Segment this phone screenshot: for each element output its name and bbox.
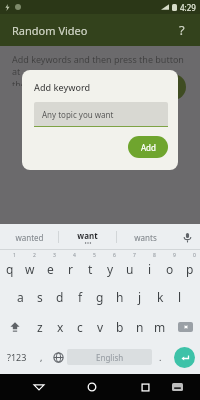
staticText: e [47,261,54,277]
button[interactable]: c [70,312,90,342]
staticText: s [37,289,43,305]
button[interactable]: 6 [100,250,120,282]
staticText: 5 [93,252,96,259]
button[interactable]: a [10,282,30,312]
button[interactable]: Shift [0,312,30,342]
staticText: 7 [133,252,136,259]
staticText: f [78,289,83,305]
button[interactable]: j [130,282,150,312]
button[interactable]: Help [172,20,192,40]
button[interactable]: s [30,282,50,312]
button[interactable]: 7 [120,250,140,282]
staticText: 6 [113,252,116,259]
staticText: 0 [193,252,196,259]
button[interactable]: Add [128,136,168,158]
button[interactable]: Backspace [170,312,200,342]
button[interactable]: 0 [180,250,200,282]
staticText: ? [179,21,185,39]
staticText: u [126,261,134,277]
staticText: English [96,352,124,363]
button[interactable]: Change language [49,342,67,372]
button[interactable]: 4 [60,250,80,282]
button[interactable]: v [90,312,110,342]
button[interactable]: 9 [160,250,180,282]
button[interactable]: h [110,282,130,312]
staticText: i [148,261,152,277]
staticText: Add keyword [34,81,91,93]
button[interactable]: z [30,312,50,342]
button[interactable]: English [67,349,152,365]
staticText: 1 [13,252,16,259]
staticText: Any topic you want [42,109,114,120]
staticText: t [88,261,93,277]
staticText: Random Video [12,23,88,38]
button[interactable]: b [110,312,130,342]
staticText: . [159,351,162,363]
button[interactable]: Back [23,374,55,400]
button[interactable]: d [50,282,70,312]
staticText: z [37,319,43,335]
button[interactable]: k [150,282,170,312]
staticText: w [25,261,35,277]
staticText: wants [134,232,157,243]
button[interactable]: want [59,224,116,250]
button[interactable]: Add [160,74,186,100]
button[interactable]: wanted [0,224,58,250]
staticText: ?123 [7,351,27,363]
staticText: h [116,289,124,305]
button[interactable]: m [150,312,170,342]
button[interactable]: 2 [20,250,40,282]
button[interactable]: Any topic you want [34,102,168,126]
staticText: p [186,261,194,277]
button[interactable]: g [90,282,110,312]
button[interactable]: wants [117,224,174,250]
staticText: 4 [73,252,76,259]
button[interactable]: 3 [40,250,60,282]
staticText: v [97,319,104,335]
button[interactable]: . [152,342,168,372]
staticText: Add keywords and then press the button a… [12,53,188,86]
staticText: q [6,261,14,277]
staticText: m [154,319,166,335]
staticText: wanted [15,232,44,243]
staticText: r [68,261,73,277]
button[interactable]: n [130,312,150,342]
staticText: d [56,289,64,305]
staticText: 8 [153,252,156,259]
staticText: 3 [53,252,56,259]
button[interactable]: Enter [174,347,195,368]
button[interactable]: , [33,342,49,372]
staticText: g [96,289,104,305]
staticText: want [77,230,98,241]
staticText: 9 [173,252,176,259]
staticText: y [107,261,114,277]
button[interactable]: f [70,282,90,312]
staticText: a [17,289,24,305]
staticText: n [136,319,144,335]
button[interactable]: Home [76,374,108,400]
button[interactable]: 8 [140,250,160,282]
button[interactable]: 1 [0,250,20,282]
button[interactable]: Voice input [174,224,200,250]
staticText: b [116,319,124,335]
button[interactable]: Recent apps [129,374,161,400]
button[interactable]: 5 [80,250,100,282]
staticText: c [77,319,83,335]
staticText: , [40,351,43,363]
staticText: x [57,319,64,335]
staticText: 4:29 [180,2,196,13]
button[interactable]: x [50,312,70,342]
staticText: 2 [33,252,36,259]
button[interactable]: Hide keyboard [161,374,193,400]
staticText: Add [141,142,156,153]
staticText: k [157,289,164,305]
staticText: o [166,261,174,277]
staticText: l [178,289,182,305]
staticText: j [138,289,142,305]
button[interactable]: ?123 [0,342,33,372]
button[interactable]: l [170,282,190,312]
